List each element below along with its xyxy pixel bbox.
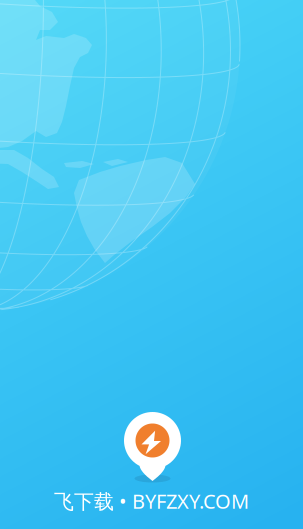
- staticText: 飞下载 • BYFZXY.COM: [54, 488, 249, 514]
